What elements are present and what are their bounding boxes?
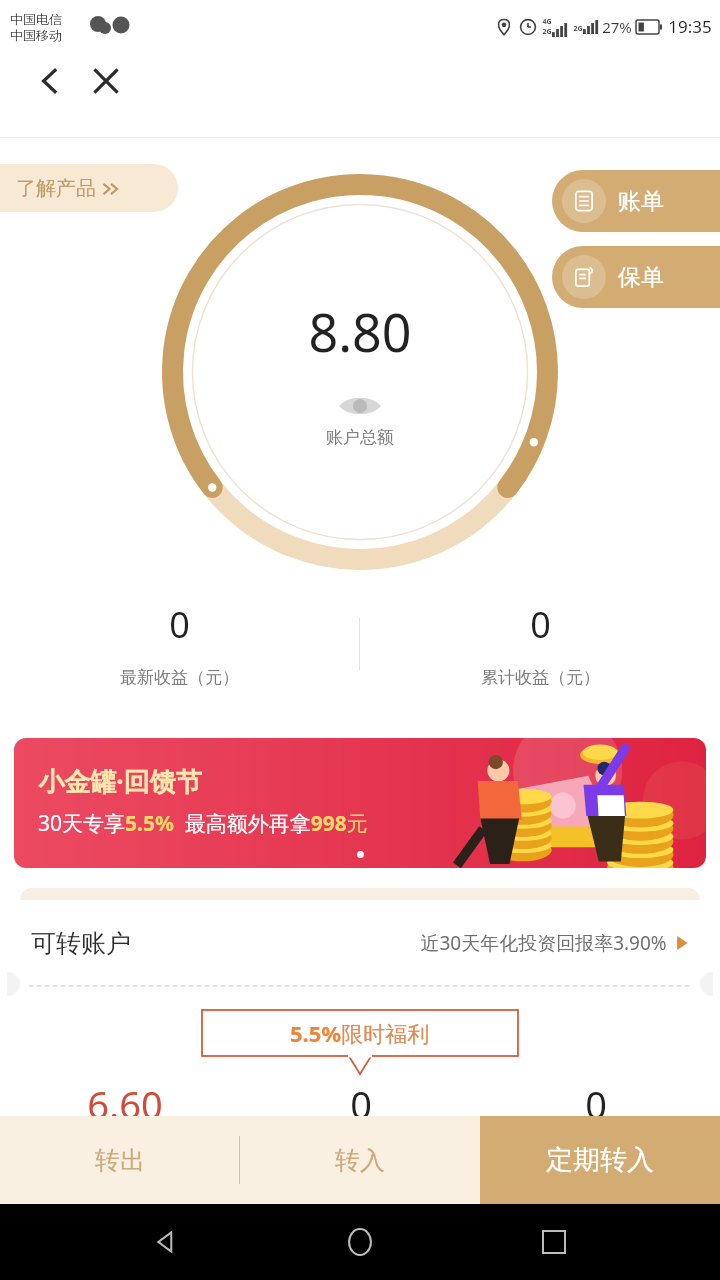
button[interactable]: 0	[0, 600, 359, 688]
button[interactable]: 可转账户	[7, 900, 713, 1160]
staticText: 6.60	[87, 1078, 163, 1130]
staticText: 0	[350, 1078, 372, 1130]
button[interactable]: 小金罐·回馈节	[14, 738, 706, 868]
staticText: 转入	[335, 1145, 385, 1176]
staticText: 5.5%限时福利	[290, 1018, 430, 1048]
button[interactable]: 转出	[0, 1116, 239, 1204]
button[interactable]: Back	[22, 53, 78, 109]
staticText: 2G	[542, 27, 552, 37]
button[interactable]: 定期转入	[480, 1116, 720, 1204]
staticText: 2G	[573, 24, 583, 34]
staticText: 保单	[618, 263, 664, 292]
staticText: 转出	[95, 1145, 145, 1176]
button[interactable]: Home	[332, 1214, 388, 1270]
staticText: 0	[530, 600, 551, 649]
staticText: 4G	[542, 17, 552, 27]
staticText: 0	[169, 600, 190, 649]
staticText: 中国电信	[10, 11, 62, 27]
staticText: 30天专享5.5% 最高额外再拿998元	[38, 809, 368, 838]
button[interactable]: 账单	[552, 170, 720, 232]
staticText: 8.80	[308, 296, 412, 367]
button[interactable]: 了解产品	[0, 164, 178, 212]
button[interactable]: 5.5%限时福利	[202, 1010, 518, 1056]
staticText: 可转账户	[31, 928, 131, 959]
staticText: 了解产品	[16, 176, 96, 201]
staticText: 0	[585, 1078, 607, 1130]
staticText: 27%	[602, 17, 632, 37]
staticText: 19:35	[668, 15, 712, 38]
button[interactable]: 0	[360, 600, 720, 688]
button[interactable]: Back	[138, 1214, 194, 1270]
staticText: 最新收益（元）	[120, 667, 239, 688]
staticText: 定期转入	[546, 1143, 654, 1177]
button[interactable]: Toggle amount visibility	[337, 393, 383, 419]
button[interactable]: 保单	[552, 246, 720, 308]
staticText: 小金罐·回馈节	[38, 763, 202, 799]
staticText: 账户总额	[326, 427, 394, 448]
staticText: 累计收益（元）	[481, 667, 600, 688]
staticText: 账单	[618, 187, 664, 216]
button[interactable]: 转入	[240, 1116, 480, 1204]
button[interactable]: Close	[78, 53, 134, 109]
staticText: 中国移动	[10, 27, 62, 43]
button[interactable]: Recents	[526, 1214, 582, 1270]
staticText: 近30天年化投资回报率3.90%	[420, 930, 667, 956]
